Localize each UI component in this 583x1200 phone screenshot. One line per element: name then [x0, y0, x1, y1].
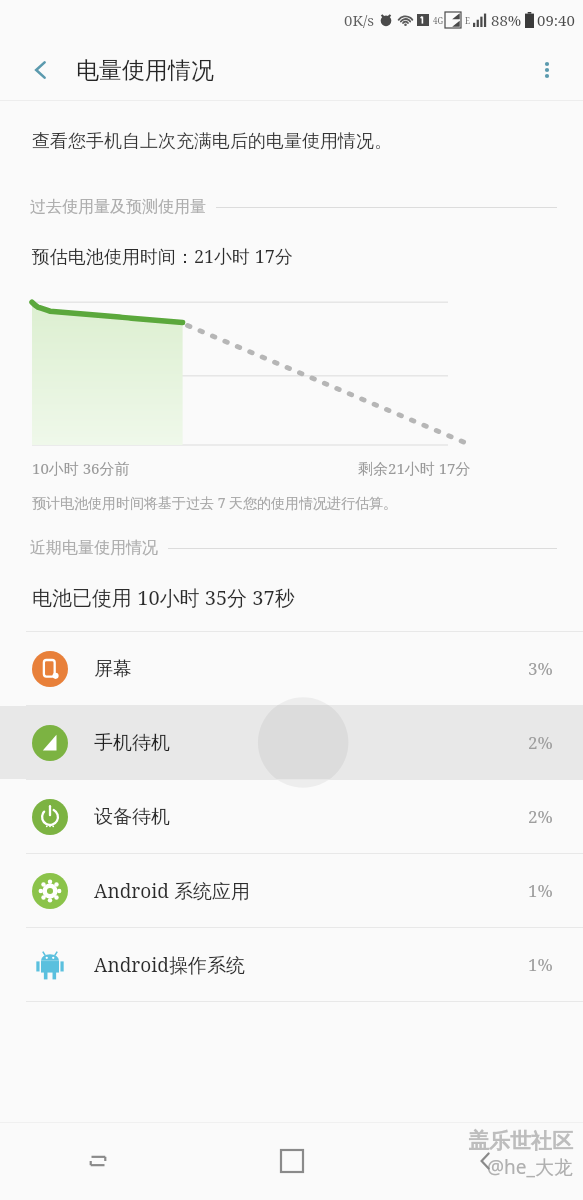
button[interactable]: 屏幕: [0, 632, 583, 705]
staticText: 屏幕: [94, 657, 132, 681]
button[interactable]: More options: [525, 48, 569, 92]
staticText: 4G: [433, 15, 444, 26]
staticText: 3%: [528, 657, 553, 680]
staticText: 剩余21小时 17分: [358, 458, 471, 478]
staticText: 预估电池使用时间：21小时 17分: [32, 244, 293, 269]
button[interactable]: Home: [195, 1122, 389, 1200]
staticText: 2%: [528, 731, 553, 754]
button[interactable]: Back: [20, 49, 62, 91]
staticText: 0K/s: [344, 10, 374, 30]
staticText: 电量使用情况: [76, 56, 214, 85]
staticText: 手机待机: [94, 731, 170, 755]
staticText: 10小时 36分前: [32, 458, 130, 478]
staticText: 88%: [491, 10, 522, 30]
button[interactable]: Android操作系统: [0, 928, 583, 1001]
button[interactable]: Android 系统应用: [0, 854, 583, 927]
staticText: Android 系统应用: [94, 878, 250, 904]
button[interactable]: Back: [389, 1122, 583, 1200]
staticText: 2%: [528, 805, 553, 828]
button[interactable]: Recents: [0, 1122, 195, 1200]
staticText: 查看您手机自上次充满电后的电量使用情况。: [32, 130, 392, 153]
staticText: 预计电池使用时间将基于过去 7 天您的使用情况进行估算。: [32, 493, 398, 512]
button[interactable]: 手机待机: [0, 706, 583, 779]
staticText: 09:40: [537, 10, 575, 30]
staticText: @he_大龙: [487, 1154, 573, 1180]
button[interactable]: 设备待机: [0, 780, 583, 853]
staticText: 过去使用量及预测使用量: [30, 197, 206, 217]
staticText: E: [465, 15, 470, 26]
staticText: Android操作系统: [94, 952, 245, 978]
staticText: 1%: [528, 879, 553, 902]
staticText: 1%: [528, 953, 553, 976]
staticText: 盖乐世社区: [468, 1128, 573, 1154]
staticText: 电池已使用 10小时 35分 37秒: [32, 584, 295, 611]
staticText: 近期电量使用情况: [30, 538, 158, 558]
staticText: 设备待机: [94, 805, 170, 829]
